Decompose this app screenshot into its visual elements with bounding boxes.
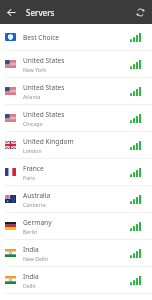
staticText: New Delhi <box>23 255 48 262</box>
staticText: Canberra <box>23 201 46 208</box>
staticText: Germany <box>23 218 52 227</box>
staticText: United States <box>23 110 65 119</box>
button[interactable]: Australia <box>0 186 152 213</box>
staticText: Delhi <box>23 282 36 289</box>
staticText: United States <box>23 83 65 92</box>
button[interactable]: United Kingdom <box>0 132 152 159</box>
staticText: Servers <box>26 7 55 18</box>
button[interactable]: United States <box>0 105 152 132</box>
staticText: Australia <box>23 191 51 200</box>
button[interactable]: Back <box>3 4 19 20</box>
staticText: Chicago <box>23 120 43 127</box>
staticText: Atlanta <box>23 93 41 100</box>
staticText: Berlin <box>23 228 38 235</box>
staticText: India <box>23 245 39 254</box>
staticText: New York <box>23 66 46 73</box>
button[interactable]: India <box>0 240 152 267</box>
staticText: United Kingdom <box>23 137 74 146</box>
button[interactable]: Best Choice <box>0 24 152 51</box>
staticText: France <box>23 164 44 173</box>
button[interactable]: France <box>0 159 152 186</box>
button[interactable]: United States <box>0 78 152 105</box>
staticText: Best Choice <box>23 33 60 42</box>
button[interactable]: United States <box>0 51 152 78</box>
button[interactable]: Germany <box>0 213 152 240</box>
button[interactable]: Refresh <box>132 4 148 20</box>
button[interactable]: India <box>0 267 152 294</box>
staticText: United States <box>23 56 65 65</box>
staticText: India <box>23 272 39 281</box>
staticText: Paris <box>23 174 36 181</box>
staticText: London <box>23 147 42 154</box>
